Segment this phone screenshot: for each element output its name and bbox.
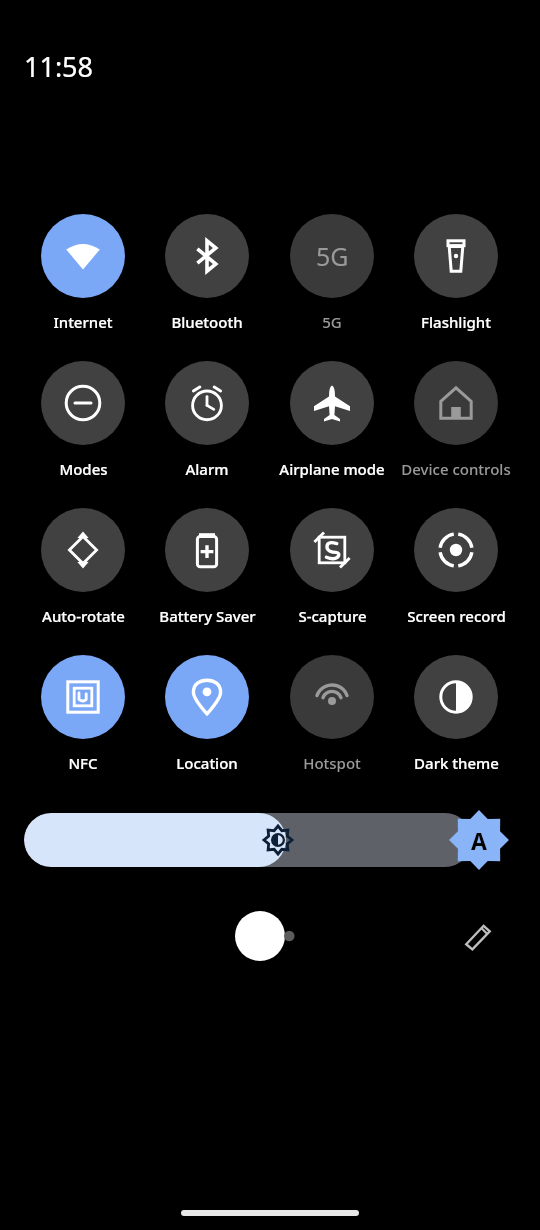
staticText: Bluetooth [171, 312, 243, 332]
button[interactable]: Internet [21, 214, 145, 332]
button[interactable]: Device controls [394, 361, 518, 479]
staticText: S-capture [298, 606, 367, 626]
staticText: Dark theme [414, 753, 499, 773]
button[interactable]: Screen record [394, 508, 518, 626]
button[interactable]: Flashlight [394, 214, 518, 332]
button[interactable]: S-capture [270, 508, 394, 626]
staticText: 11:58 [24, 48, 94, 85]
staticText: Location [176, 753, 238, 773]
staticText: Modes [59, 459, 108, 479]
staticText: Auto-rotate [42, 606, 125, 626]
button[interactable]: Battery Saver [145, 508, 269, 626]
button[interactable]: Hotspot [270, 655, 394, 773]
staticText: Airplane mode [279, 459, 385, 479]
button[interactable]: Dark theme [394, 655, 518, 773]
staticText: Device controls [401, 459, 511, 479]
button[interactable]: Location [145, 655, 269, 773]
staticText: Alarm [185, 459, 229, 479]
staticText: Internet [53, 312, 113, 332]
staticText: Battery Saver [159, 606, 256, 626]
button[interactable]: Brightness [24, 813, 472, 867]
button[interactable]: NFC [21, 655, 145, 773]
button[interactable]: Edit [456, 915, 500, 959]
staticText: 5G [322, 312, 342, 332]
staticText: NFC [68, 753, 98, 773]
button[interactable]: Alarm [145, 361, 269, 479]
button[interactable]: Airplane mode [270, 361, 394, 479]
staticText: Screen record [407, 606, 506, 626]
button[interactable]: Modes [21, 361, 145, 479]
staticText: Flashlight [421, 312, 491, 332]
staticText: Hotspot [303, 753, 361, 773]
button[interactable]: 5G [270, 214, 394, 332]
button[interactable]: Bluetooth [145, 214, 269, 332]
staticText: 5G [316, 239, 349, 273]
button[interactable]: Auto-rotate [21, 508, 145, 626]
staticText: A [471, 825, 487, 856]
button[interactable]: Auto brightness [449, 810, 509, 870]
